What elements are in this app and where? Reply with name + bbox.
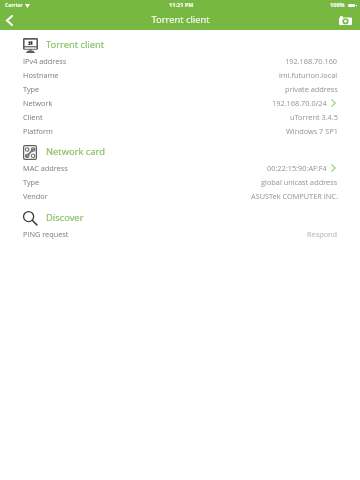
staticText: 192.168.70.0/24 [272, 98, 327, 108]
staticText: 100% [330, 1, 345, 9]
button[interactable]: Network card [0, 143, 360, 161]
staticText: Platform [23, 126, 53, 136]
staticText: Network card [46, 145, 105, 158]
staticText: imi.futurion.local [279, 70, 338, 80]
button[interactable]: Platform [0, 124, 360, 138]
staticText: Windows 7 SP1 [286, 126, 338, 136]
staticText: Network [23, 98, 53, 108]
staticText: 11:21 PM [169, 1, 194, 9]
staticText: 00:22:15:90:AF:F4 [267, 163, 327, 173]
staticText: uTorrent 3.4.5 [290, 112, 338, 122]
staticText: private address [285, 84, 338, 94]
staticText: ASUSTek COMPUTER INC. [251, 191, 338, 201]
button[interactable]: Type [0, 175, 360, 189]
button[interactable]: MAC address [0, 161, 360, 175]
button[interactable]: Hostname [0, 68, 360, 82]
staticText: Type [23, 84, 40, 94]
staticText: 192.168.70.160 [285, 56, 338, 66]
staticText: Respond [307, 229, 338, 239]
button[interactable]: Network [0, 96, 360, 110]
button[interactable]: Discover [0, 209, 360, 227]
staticText: PING request [23, 229, 69, 239]
button[interactable]: PING request [0, 227, 360, 241]
staticText: global unicast address [261, 177, 338, 187]
button[interactable]: Torrent client [0, 36, 360, 54]
button[interactable]: Camera [335, 9, 355, 31]
button[interactable]: Back [0, 9, 20, 31]
staticText: MAC address [23, 163, 68, 173]
staticText: Vendor [23, 191, 48, 201]
button[interactable]: Type [0, 82, 360, 96]
staticText: Hostname [23, 70, 59, 80]
staticText: Torrent client [151, 13, 210, 26]
staticText: Discover [46, 211, 84, 224]
staticText: IPv4 address [23, 56, 67, 66]
staticText: Torrent client [46, 38, 105, 51]
button[interactable]: IPv4 address [0, 54, 360, 68]
staticText: Client [23, 112, 43, 122]
button[interactable]: Vendor [0, 189, 360, 203]
staticText: Type [23, 177, 40, 187]
button[interactable]: Client [0, 110, 360, 124]
staticText: Carrier [5, 2, 23, 9]
